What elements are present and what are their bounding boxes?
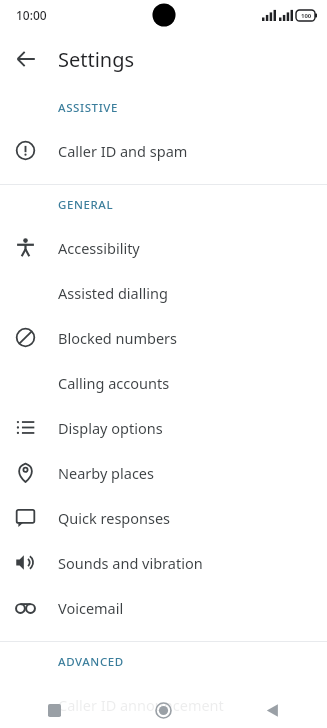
button[interactable]: Assisted dialling [0,270,327,315]
staticText: Display options [58,418,163,438]
staticText: ASSISTIVE [58,100,118,116]
staticText: Settings [58,46,135,73]
button[interactable]: Display options [0,405,327,450]
staticText: GENERAL [58,197,114,213]
button[interactable]: Nearby places [0,450,327,495]
staticText: ADVANCED [58,654,124,670]
staticText: Voicemail [58,598,124,618]
button[interactable]: Caller ID announcement [0,682,327,727]
staticText: Calling accounts [58,373,170,393]
staticText: Caller ID announcement [58,695,224,715]
button[interactable]: Back [218,692,327,728]
staticText: Caller ID and spam [58,141,188,161]
staticText: Blocked numbers [58,328,178,348]
button[interactable]: Recents [0,692,109,728]
button[interactable]: Sounds and vibration [0,540,327,585]
staticText: 10:00 [16,7,47,23]
staticText: Assisted dialling [58,283,168,303]
staticText: Nearby places [58,463,154,483]
button[interactable]: Caller ID and spam [0,128,327,173]
button[interactable]: Blocked numbers [0,315,327,360]
button[interactable]: Voicemail [0,585,327,630]
staticText: Quick responses [58,508,171,528]
staticText: 100 [301,12,312,20]
button[interactable]: Home [109,692,218,728]
button[interactable]: Calling accounts [0,360,327,405]
button[interactable]: Quick responses [0,495,327,540]
staticText: Accessibility [58,238,140,258]
button[interactable]: Accessibility [0,225,327,270]
staticText: Sounds and vibration [58,553,203,573]
button[interactable]: Back [6,39,46,79]
